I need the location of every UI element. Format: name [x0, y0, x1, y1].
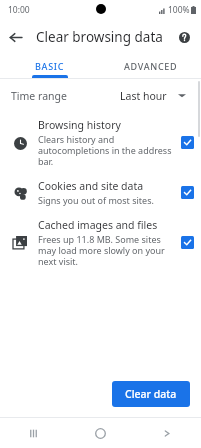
staticText: Cached images and files — [38, 218, 158, 232]
button[interactable]: Recents — [0, 418, 67, 448]
staticText: Time range — [11, 89, 67, 103]
staticText: Clear data — [125, 387, 177, 401]
staticText: Signs you out of most sites. — [38, 194, 154, 206]
staticText: ADVANCED — [124, 60, 178, 72]
button[interactable]: Help — [170, 23, 198, 51]
staticText: Clears history and autocompletions in th… — [38, 133, 175, 167]
button[interactable]: Back — [134, 418, 201, 448]
staticText: Last hour — [120, 89, 167, 103]
button[interactable]: Browsing history — [0, 112, 201, 173]
staticText: BASIC — [35, 60, 65, 72]
button[interactable]: Clear data — [112, 381, 190, 407]
button[interactable]: Checked — [181, 186, 194, 199]
button[interactable]: Cookies and site data — [0, 173, 201, 212]
button[interactable]: Cached images and files — [0, 212, 201, 273]
button[interactable]: Checked — [181, 236, 194, 249]
staticText: Browsing history — [38, 118, 121, 132]
staticText: Cookies and site data — [38, 179, 144, 193]
button[interactable]: Checked — [181, 136, 194, 149]
button[interactable]: Back — [0, 22, 30, 52]
staticText: Frees up 11.8 MB. Some sites may load mo… — [38, 233, 175, 267]
staticText: 10:00 — [8, 4, 30, 16]
staticText: Clear browsing data — [36, 28, 163, 46]
staticText: 100% — [168, 4, 190, 16]
button[interactable]: Time range — [0, 79, 201, 112]
button[interactable]: BASIC — [0, 53, 100, 78]
button[interactable]: Home — [67, 418, 134, 448]
button[interactable]: ADVANCED — [100, 53, 201, 78]
